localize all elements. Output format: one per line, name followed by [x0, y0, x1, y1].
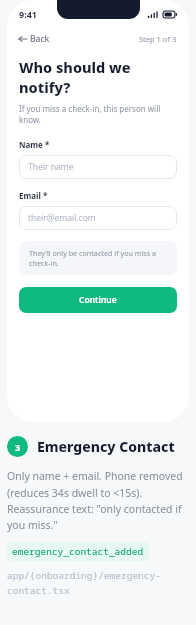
- staticText: Continue: [79, 294, 117, 306]
- staticText: If you miss a check-in, this person will…: [19, 103, 177, 125]
- staticText: They'll only be contacted if you miss a …: [29, 248, 167, 268]
- staticText: emergency_contact_added: [12, 545, 144, 558]
- staticText: Their name: [28, 161, 74, 173]
- staticText: Who should we notify?: [19, 57, 177, 97]
- button[interactable]: Their name: [19, 155, 177, 179]
- button[interactable]: Back: [19, 33, 54, 45]
- staticText: Only name + email. Phone removed (reduce…: [7, 469, 189, 532]
- staticText: 3: [15, 441, 21, 453]
- staticText: Name *: [19, 139, 50, 150]
- staticText: Email *: [19, 190, 48, 201]
- button[interactable]: their@email.com: [19, 206, 177, 230]
- other: Back: [19, 35, 27, 43]
- staticText: Step 1 of 3: [139, 34, 177, 44]
- staticText: Emergency Contact: [37, 437, 175, 456]
- staticText: app/(onboarding)/emergency-contact.tsx: [7, 569, 189, 597]
- button[interactable]: Continue: [19, 287, 177, 313]
- staticText: their@email.com: [28, 212, 96, 224]
- staticText: Back: [30, 33, 50, 45]
- staticText: 9:41: [19, 8, 37, 20]
